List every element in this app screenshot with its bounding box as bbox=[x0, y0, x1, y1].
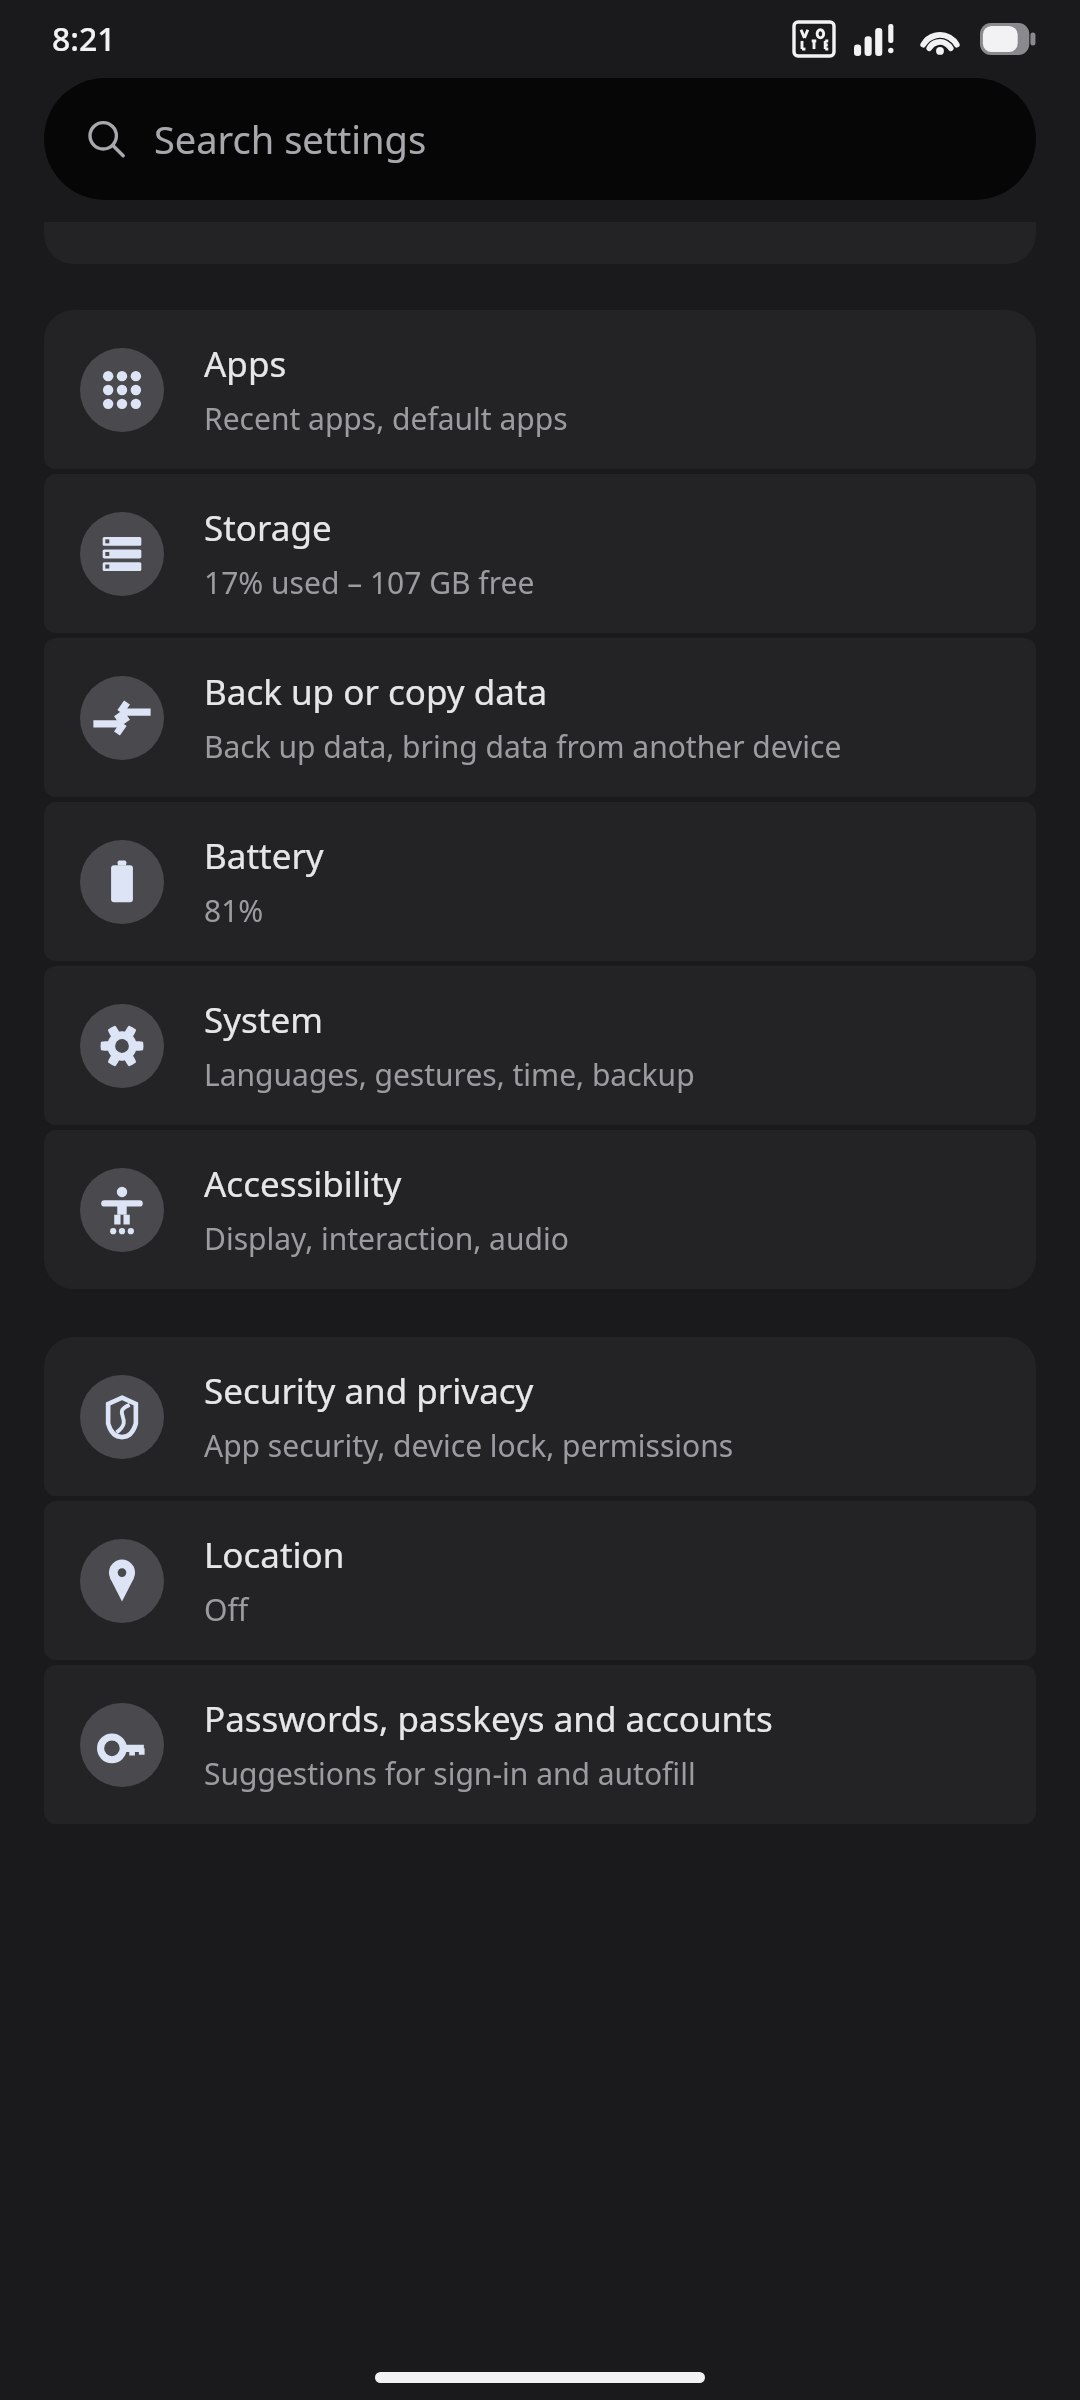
other: Storage bbox=[80, 512, 164, 596]
other: Security and privacy bbox=[80, 1375, 164, 1459]
staticText: Battery bbox=[204, 832, 324, 880]
staticText: Storage bbox=[204, 504, 332, 552]
staticText: System bbox=[204, 996, 323, 1044]
staticText: 81% bbox=[204, 890, 264, 931]
staticText: Off bbox=[204, 1589, 249, 1630]
staticText: 17% used – 107 GB free bbox=[204, 562, 535, 603]
other: System bbox=[80, 1004, 164, 1088]
staticText: Passwords, passkeys and accounts bbox=[204, 1695, 773, 1743]
staticText: Search settings bbox=[154, 113, 427, 165]
other: Location bbox=[80, 1539, 164, 1623]
other: Accessibility bbox=[80, 1168, 164, 1252]
button[interactable]: System bbox=[44, 966, 1036, 1125]
staticText: 8:21 bbox=[52, 17, 116, 61]
button[interactable]: Battery bbox=[44, 802, 1036, 961]
button[interactable]: Storage bbox=[44, 474, 1036, 633]
button[interactable]: Location bbox=[44, 1501, 1036, 1660]
button[interactable]: Passwords, passkeys and accounts bbox=[44, 1665, 1036, 1824]
other: Apps bbox=[80, 348, 164, 432]
button[interactable]: Accessibility bbox=[44, 1130, 1036, 1289]
button[interactable]: Back up or copy data bbox=[44, 638, 1036, 797]
other: Back up or copy data bbox=[80, 676, 164, 760]
staticText: Suggestions for sign-in and autofill bbox=[204, 1753, 696, 1794]
staticText: Security and privacy bbox=[204, 1367, 534, 1415]
button[interactable]: Apps bbox=[44, 310, 1036, 469]
staticText: App security, device lock, permissions bbox=[204, 1425, 734, 1466]
staticText: Accessibility bbox=[204, 1160, 402, 1208]
other: Passwords, passkeys and accounts bbox=[80, 1703, 164, 1787]
other: Battery bbox=[80, 840, 164, 924]
staticText: Back up data, bring data from another de… bbox=[204, 726, 842, 767]
staticText: Apps bbox=[204, 340, 287, 388]
staticText: Back up or copy data bbox=[204, 668, 548, 716]
staticText: Recent apps, default apps bbox=[204, 398, 568, 439]
staticText: Location bbox=[204, 1531, 345, 1579]
staticText: Languages, gestures, time, backup bbox=[204, 1054, 695, 1095]
button[interactable]: Security and privacy bbox=[44, 1337, 1036, 1496]
staticText: Display, interaction, audio bbox=[204, 1218, 569, 1259]
button[interactable]: Search settings bbox=[44, 78, 1036, 200]
